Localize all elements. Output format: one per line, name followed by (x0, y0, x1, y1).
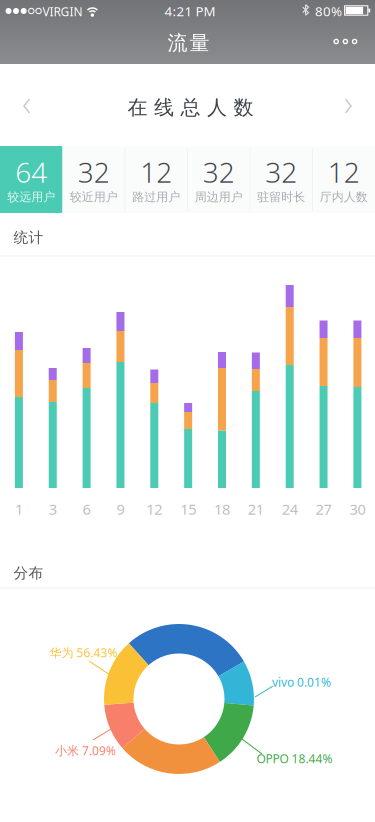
staticText: 分布 (13, 564, 43, 582)
staticText: OPPO 18.44% (256, 750, 332, 766)
staticText: 21 (248, 499, 264, 519)
staticText: 12 (328, 153, 360, 191)
staticText: 32 (265, 153, 297, 191)
staticText: 华为 56.43% (49, 644, 117, 660)
staticText: 在线总人数 (127, 95, 253, 120)
staticText: 9 (116, 499, 124, 519)
staticText: 驻留时长 (257, 190, 305, 204)
button[interactable]: 32 (250, 146, 312, 213)
button[interactable]: More (332, 32, 362, 50)
staticText: 30 (349, 499, 365, 519)
button[interactable]: 64 (0, 146, 62, 213)
staticText: 厅内人数 (320, 190, 368, 204)
staticText: 32 (203, 153, 235, 191)
staticText: 统计 (13, 228, 43, 246)
staticText: 64 (15, 153, 47, 191)
staticText: 较近用户 (70, 190, 118, 204)
staticText: 4:21 PM (164, 2, 215, 20)
staticText: 1 (15, 499, 23, 519)
staticText: 6 (83, 499, 91, 519)
button[interactable]: Previous (14, 92, 40, 120)
staticText: 24 (282, 499, 298, 519)
staticText: 15 (180, 499, 196, 519)
staticText: 12 (140, 153, 172, 191)
staticText: 12 (146, 499, 162, 519)
staticText: 周边用户 (195, 190, 243, 204)
button[interactable]: 32 (187, 146, 250, 213)
staticText: 流量 (167, 31, 209, 55)
staticText: 18 (214, 499, 230, 519)
staticText: 路过用户 (132, 190, 180, 204)
staticText: 80% (315, 2, 342, 20)
staticText: 较远用户 (7, 190, 55, 204)
button[interactable]: 32 (62, 146, 125, 213)
staticText: VIRGIN (42, 3, 82, 19)
staticText: vivo 0.01% (272, 674, 331, 690)
staticText: 32 (78, 153, 110, 191)
staticText: 3 (49, 499, 57, 519)
button[interactable]: 12 (312, 146, 375, 213)
button[interactable]: 12 (125, 146, 187, 213)
staticText: 小米 7.09% (55, 742, 116, 758)
button[interactable]: Next (335, 92, 361, 120)
staticText: 27 (316, 499, 332, 519)
